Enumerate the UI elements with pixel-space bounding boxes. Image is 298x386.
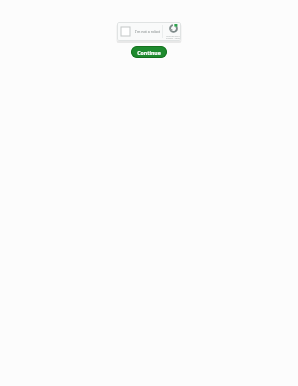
other: reCAPTCHA logo xyxy=(169,24,178,33)
staticText: Privacy - Terms xyxy=(166,37,181,40)
staticText: reCAPTCHA xyxy=(166,34,180,37)
staticText: I'm not a robot xyxy=(135,29,161,34)
button[interactable]: I'm not a robot checkbox xyxy=(117,22,181,41)
staticText: Continue xyxy=(137,49,161,56)
button[interactable]: Continue xyxy=(131,46,167,58)
button[interactable]: I'm not a robot checkbox xyxy=(121,27,130,36)
